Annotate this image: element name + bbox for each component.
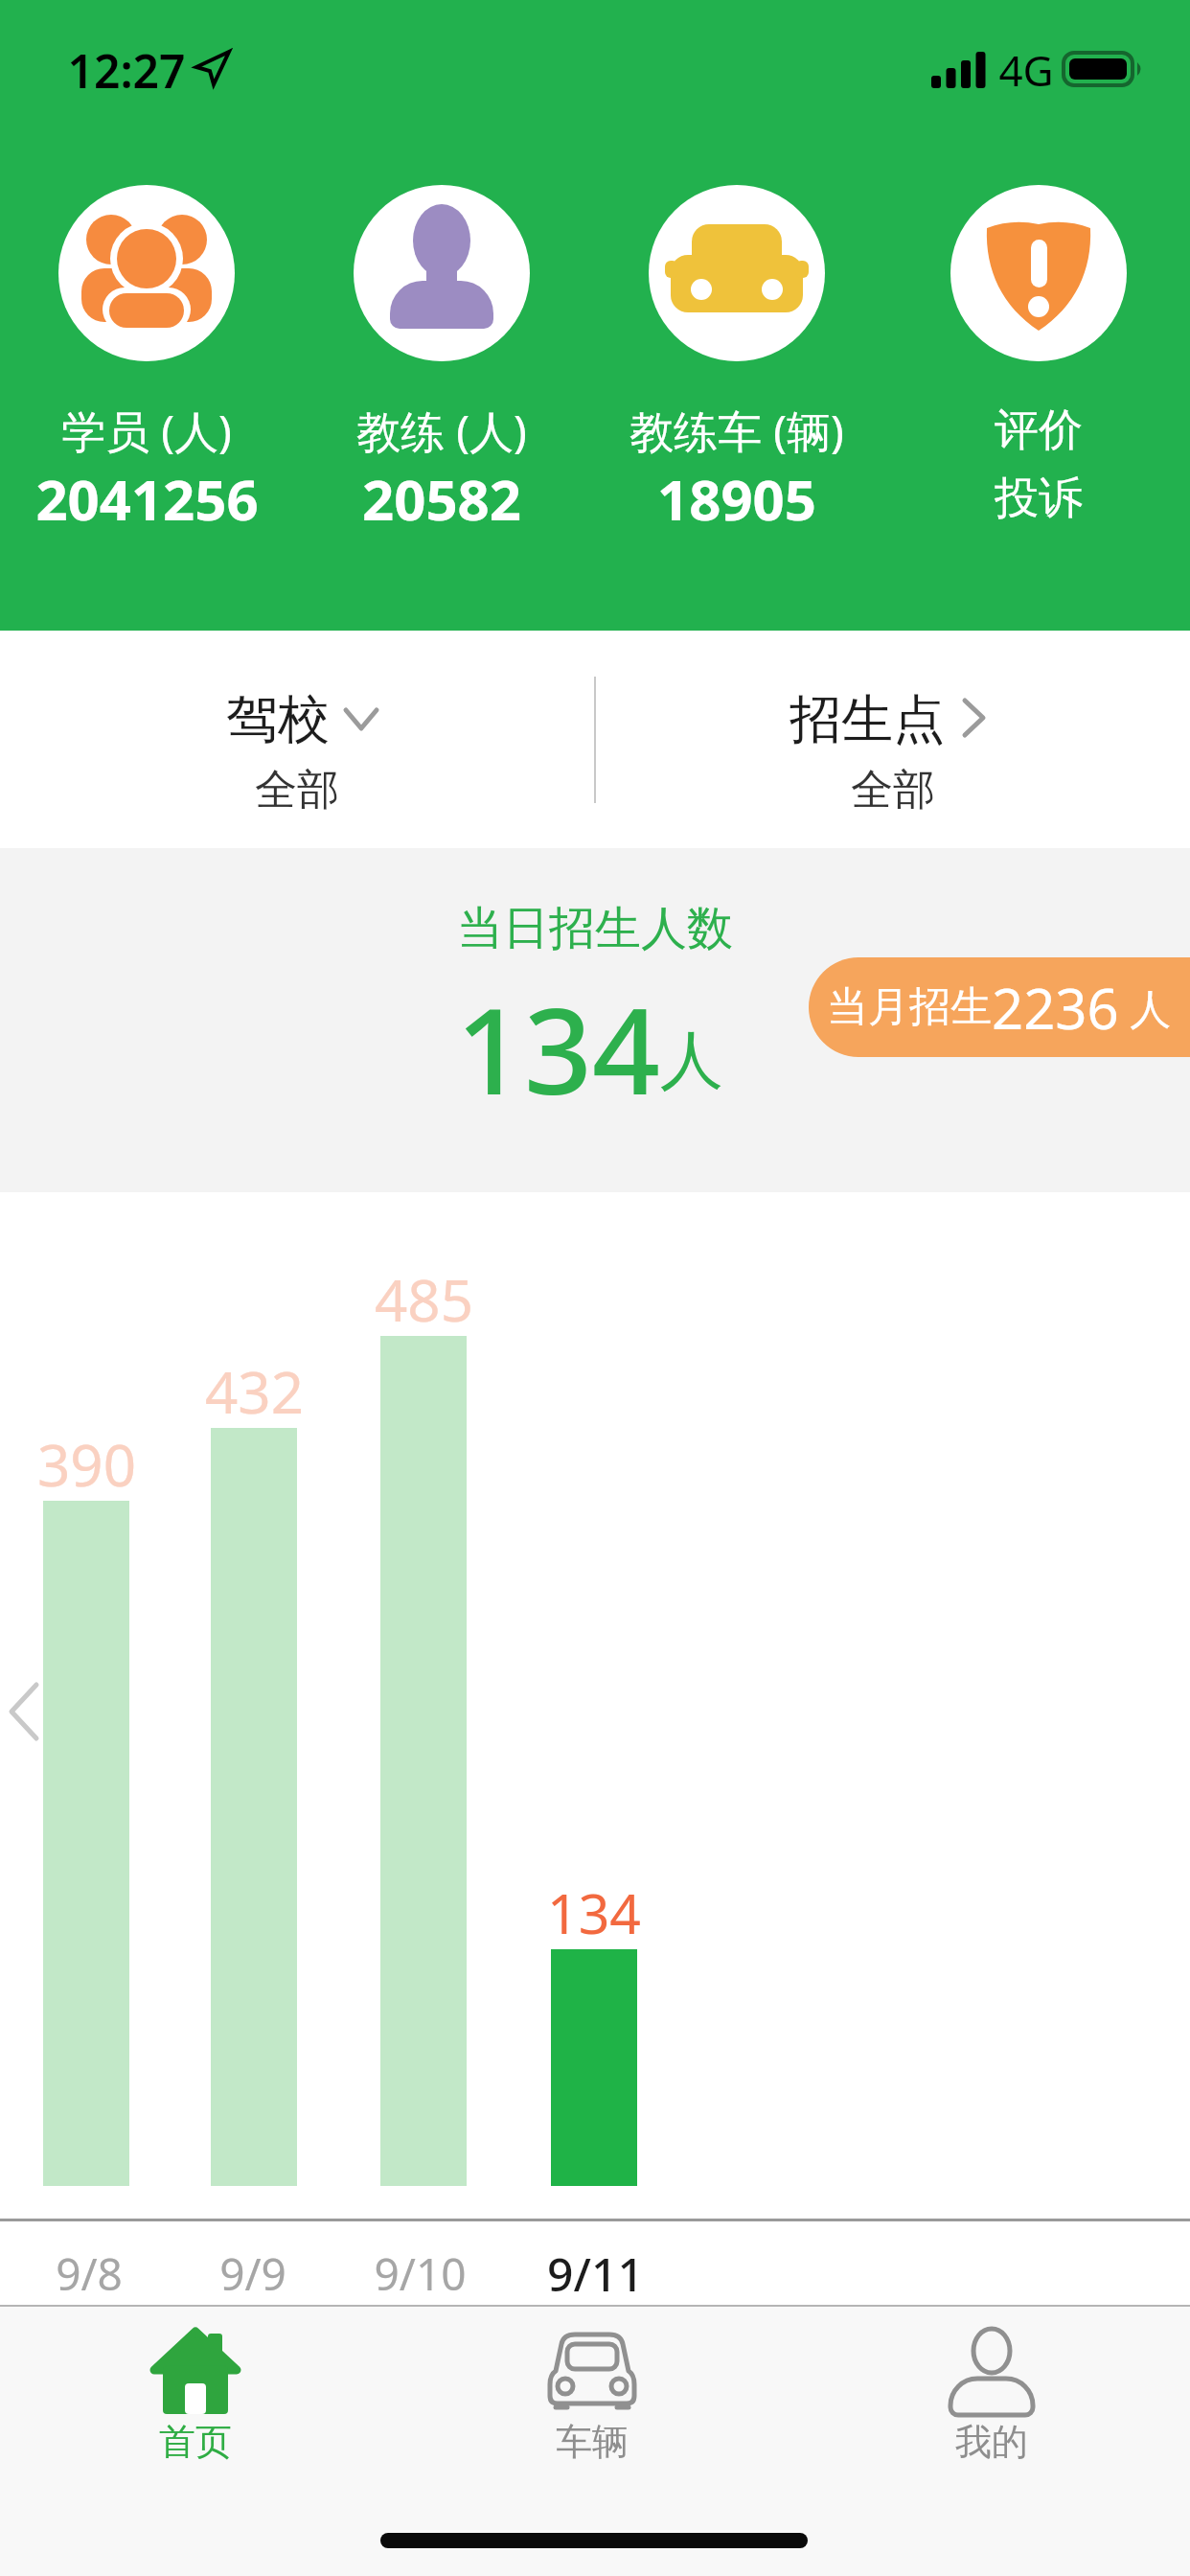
button[interactable]: [100, 2314, 291, 2477]
staticText: 评价: [995, 402, 1083, 458]
staticText: 教练 (人): [356, 401, 527, 461]
staticText: 2236: [992, 970, 1119, 1046]
staticText: 390: [37, 1425, 136, 1504]
staticText: 车辆: [556, 2419, 629, 2465]
staticText: 9/11: [547, 2242, 644, 2305]
button[interactable]: [496, 2314, 688, 2477]
staticText: 驾校: [226, 687, 330, 752]
staticText: 134: [456, 967, 660, 1129]
staticText: 全部: [255, 764, 339, 816]
staticText: 我的: [955, 2419, 1028, 2465]
staticText: 4G: [998, 41, 1054, 99]
staticText: 12:27: [67, 39, 186, 102]
button[interactable]: [649, 185, 825, 361]
button[interactable]: [58, 185, 235, 361]
staticText: 432: [205, 1352, 304, 1431]
button[interactable]: [596, 631, 1190, 848]
button[interactable]: [896, 2314, 1087, 2477]
staticText: 20582: [362, 461, 521, 537]
staticText: 9/9: [219, 2243, 286, 2304]
button[interactable]: [0, 631, 594, 848]
button[interactable]: [354, 185, 530, 361]
staticText: 学员 (人): [61, 401, 232, 461]
button[interactable]: [950, 185, 1127, 361]
staticText: 9/10: [374, 2243, 467, 2304]
staticText: 18905: [657, 461, 816, 537]
staticText: 2041256: [35, 461, 259, 537]
staticText: 人: [660, 1021, 723, 1100]
staticText: 招生点: [790, 687, 945, 752]
staticText: 9/8: [56, 2243, 123, 2304]
staticText: 人: [1119, 979, 1172, 1036]
button[interactable]: 当月招生: [809, 957, 1190, 1057]
staticText: 投诉: [995, 471, 1083, 526]
staticText: 教练车 (辆): [629, 401, 844, 461]
staticText: 当月招生: [827, 981, 992, 1033]
staticText: 485: [375, 1260, 473, 1339]
staticText: 当日招生人数: [457, 900, 733, 957]
staticText: 全部: [851, 764, 935, 816]
staticText: 首页: [159, 2419, 232, 2465]
staticText: 134: [547, 1875, 641, 1950]
